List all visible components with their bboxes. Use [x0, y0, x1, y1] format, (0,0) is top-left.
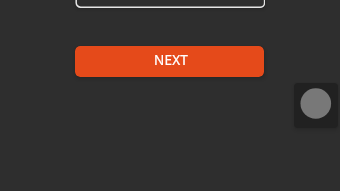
- button[interactable]: Previous: [75, 0, 265, 8]
- staticText: NEXT: [154, 51, 188, 69]
- button[interactable]: NEXT: [75, 46, 264, 77]
- button[interactable]: Profile: [294, 83, 338, 128]
